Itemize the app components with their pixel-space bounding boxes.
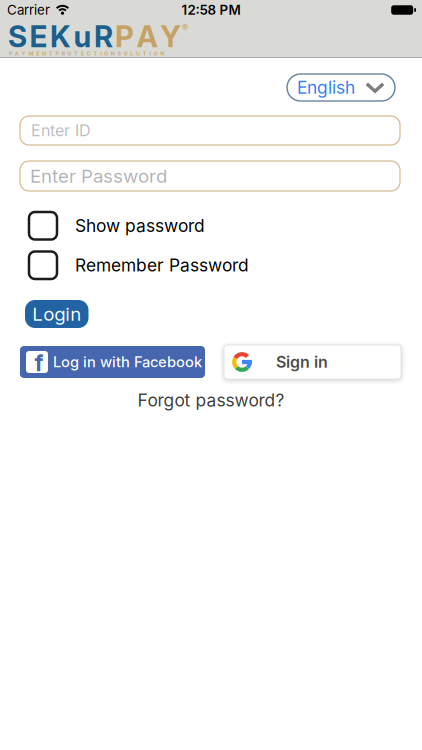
staticText: f — [34, 350, 43, 376]
staticText: R — [61, 50, 64, 57]
staticText: Enter Password — [30, 165, 167, 187]
button[interactable]: Sign in — [224, 345, 401, 379]
staticText: S — [118, 50, 121, 57]
staticText: E — [29, 19, 47, 54]
staticText: T — [49, 50, 53, 57]
staticText: E — [36, 50, 39, 57]
staticText: T — [143, 50, 147, 57]
staticText: P — [9, 50, 12, 57]
staticText: Remember Password — [75, 255, 249, 275]
button[interactable]: Forgot password? — [137, 390, 284, 410]
staticText: u — [73, 19, 91, 54]
staticText: I — [150, 50, 151, 57]
staticText: A — [136, 19, 157, 54]
staticText: A — [15, 50, 19, 57]
staticText: N — [160, 50, 164, 57]
staticText: Login — [32, 303, 81, 325]
staticText: M — [28, 50, 33, 57]
staticText: Show password — [75, 215, 205, 236]
staticText: Y — [22, 50, 26, 57]
button[interactable]: English — [287, 74, 395, 101]
staticText: O — [104, 50, 108, 57]
staticText: Carrier — [7, 2, 50, 18]
button[interactable]: Login — [25, 300, 88, 328]
button[interactable]: Show password — [29, 212, 205, 239]
staticText: N — [42, 50, 46, 57]
staticText: P — [115, 19, 134, 54]
staticText: Y — [160, 19, 181, 54]
staticText: Log in with Facebook — [53, 353, 202, 371]
staticText: O — [67, 50, 71, 57]
staticText: Enter ID — [31, 121, 91, 140]
staticText: K — [50, 19, 71, 54]
staticText: Forgot password? — [137, 390, 284, 410]
staticText: E — [81, 50, 84, 57]
staticText: O — [123, 50, 127, 57]
staticText: P — [56, 50, 59, 57]
button[interactable]: Remember Password — [29, 251, 249, 279]
staticText: English — [297, 77, 355, 98]
staticText: 12:58 PM — [181, 2, 240, 18]
staticText: Sign in — [276, 353, 328, 371]
staticText: L — [130, 50, 133, 57]
staticText: T — [93, 50, 97, 57]
staticText: N — [111, 50, 115, 57]
staticText: O — [153, 50, 157, 57]
staticText: R — [94, 19, 113, 54]
button[interactable]: f — [20, 346, 205, 378]
staticText: ® — [182, 22, 188, 33]
staticText: T — [74, 50, 78, 57]
staticText: U — [136, 50, 140, 57]
staticText: I — [100, 50, 101, 57]
staticText: C — [87, 50, 91, 57]
staticText: S — [8, 19, 27, 54]
